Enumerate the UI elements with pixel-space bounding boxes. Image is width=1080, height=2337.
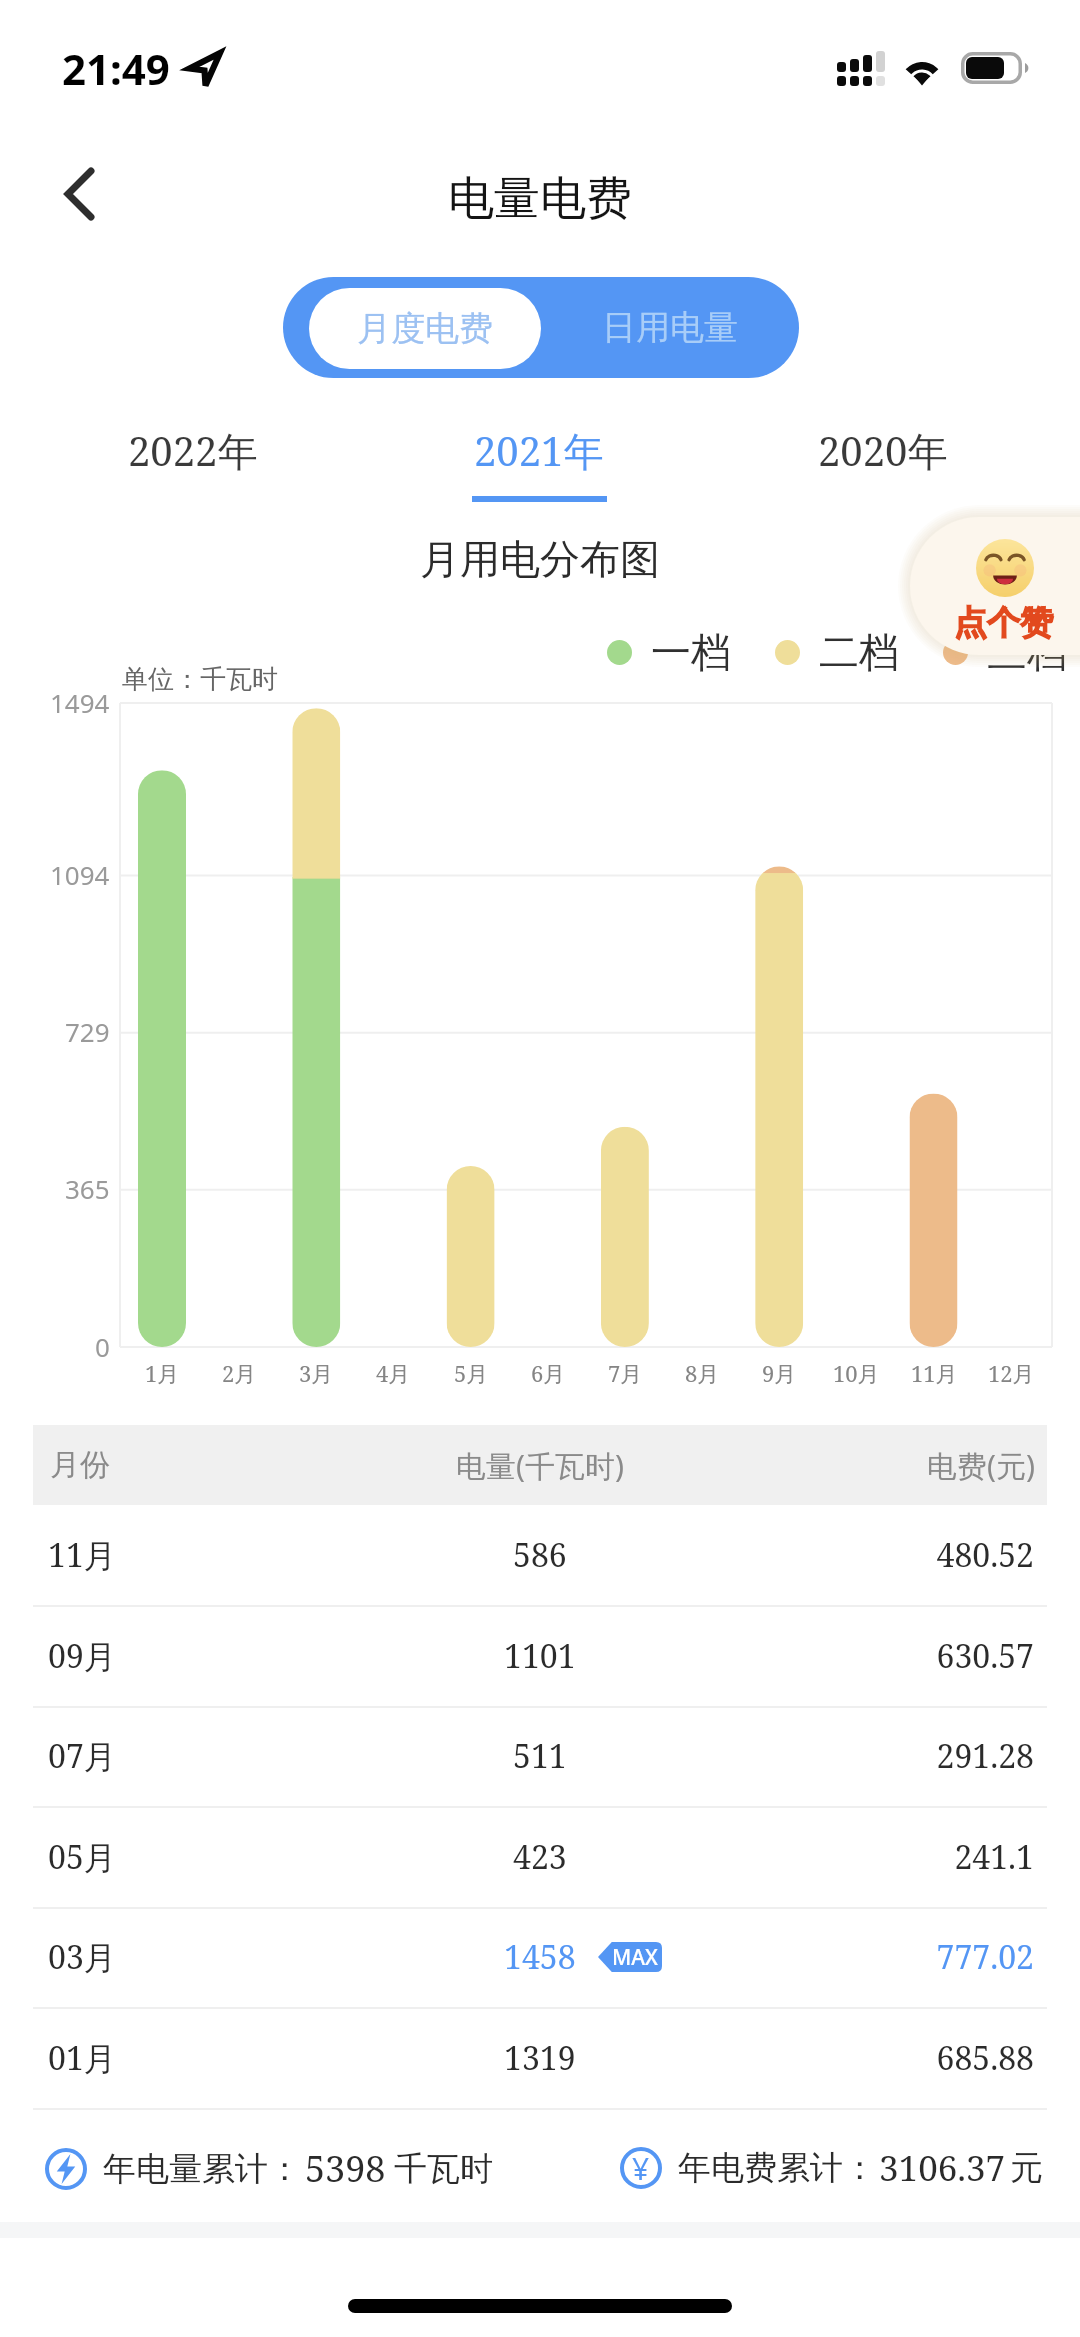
button[interactable]: 11月	[33, 1505, 1047, 1605]
staticText: 8月	[685, 1358, 720, 1388]
staticText: 月用电分布图	[0, 534, 1080, 584]
button[interactable]: 05月	[33, 1807, 1047, 1907]
staticText: 01月	[48, 2036, 333, 2080]
staticText: 电费(元)	[747, 1445, 1035, 1486]
staticText: 480.52	[747, 1533, 1034, 1577]
staticText: 元	[1010, 2147, 1043, 2189]
staticText: 2020年	[818, 423, 948, 478]
staticText: 年电费累计：	[678, 2147, 876, 2189]
staticText: 03月	[48, 1935, 333, 1979]
button[interactable]: 09月	[33, 1606, 1047, 1706]
staticText: 777.02	[747, 1935, 1034, 1979]
staticText: 二档	[819, 627, 899, 677]
staticText: 电量(千瓦时)	[333, 1445, 747, 1486]
staticText: 日用电量	[602, 306, 738, 349]
staticText: 2月	[222, 1358, 257, 1388]
staticText: 241.1	[747, 1835, 1034, 1879]
staticText: 511	[513, 1734, 567, 1778]
staticText: 3月	[299, 1358, 334, 1388]
button[interactable]: 月度电费	[309, 288, 541, 369]
staticText: 10月	[833, 1358, 880, 1388]
staticText: 07月	[48, 1734, 333, 1778]
staticText: 685.88	[747, 2036, 1034, 2080]
staticText: 729	[65, 1014, 110, 1049]
staticText: 1494	[50, 685, 110, 720]
staticText: 1月	[145, 1358, 180, 1388]
button[interactable]: 2022年	[78, 417, 308, 508]
staticText: 点个赞	[954, 602, 1053, 644]
button[interactable]: Like	[910, 517, 1080, 655]
staticText: 09月	[48, 1634, 333, 1678]
staticText: 6月	[531, 1358, 566, 1388]
button[interactable]: 日用电量	[541, 277, 799, 378]
staticText: 月份	[50, 1446, 333, 1484]
staticText: 5398	[305, 2144, 386, 2193]
button[interactable]: 2021年	[424, 417, 654, 508]
staticText: 9月	[762, 1358, 797, 1388]
staticText: 12月	[988, 1358, 1035, 1388]
staticText: MAX	[612, 1943, 658, 1972]
staticText: 4月	[376, 1358, 411, 1388]
staticText: 1101	[504, 1634, 576, 1678]
staticText: 5月	[454, 1358, 489, 1388]
staticText: 0	[95, 1329, 110, 1364]
button[interactable]: 07月	[33, 1706, 1047, 1806]
staticText: 365	[65, 1171, 110, 1206]
staticText: 11月	[911, 1358, 958, 1388]
staticText: 630.57	[747, 1634, 1034, 1678]
staticText: 三档	[987, 627, 1067, 677]
staticText: 2022年	[128, 423, 258, 478]
staticText: 千瓦时	[394, 2148, 493, 2190]
staticText: 1094	[50, 857, 110, 892]
button[interactable]: Back	[34, 150, 124, 240]
staticText: 7月	[608, 1358, 643, 1388]
staticText: 3106.37	[879, 2144, 1006, 2192]
button[interactable]: 01月	[33, 2008, 1047, 2108]
staticText: 单位：千瓦时	[122, 663, 278, 696]
staticText: 电量电费	[0, 170, 1080, 228]
staticText: 11月	[48, 1533, 333, 1577]
staticText: 586	[513, 1533, 567, 1577]
staticText: 一档	[651, 627, 731, 677]
staticText: 1458	[504, 1935, 576, 1979]
staticText: 291.28	[747, 1734, 1034, 1778]
button[interactable]: 2020年	[768, 417, 998, 508]
staticText: 2021年	[474, 423, 604, 478]
staticText: 05月	[48, 1835, 333, 1879]
staticText: 21:49	[62, 40, 170, 97]
button[interactable]: 03月	[33, 1907, 1047, 2007]
staticText: 年电量累计：	[103, 2148, 301, 2190]
staticText: ¥	[632, 2148, 650, 2189]
staticText: 1319	[504, 2036, 576, 2080]
staticText: 423	[513, 1835, 567, 1879]
staticText: 月度电费	[357, 307, 493, 350]
